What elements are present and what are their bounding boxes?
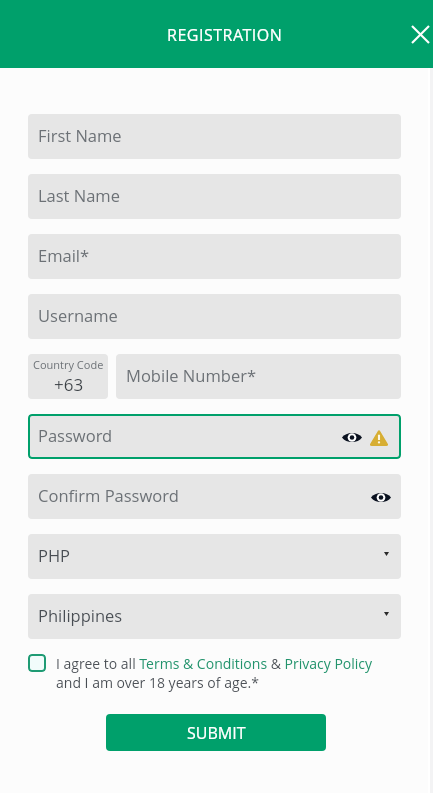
button[interactable]: PHP — [28, 534, 401, 579]
button[interactable]: Philippines — [28, 594, 401, 639]
staticText: and I am over 18 years of age.* — [56, 673, 259, 692]
staticText: Username — [38, 304, 118, 326]
staticText: Mobile Number* — [126, 364, 256, 386]
button[interactable]: Last Name — [28, 174, 401, 219]
button[interactable]: First Name — [28, 114, 401, 159]
staticText: Confirm Password — [38, 484, 179, 506]
button[interactable]: SUBMIT — [106, 714, 326, 751]
staticText: SUBMIT — [187, 722, 246, 744]
staticText: REGISTRATION — [167, 24, 283, 46]
button[interactable]: Show confirm password — [369, 485, 393, 509]
button[interactable]: Mobile Number* — [116, 354, 401, 399]
button[interactable]: Username — [28, 294, 401, 339]
button[interactable]: Confirm Password — [28, 474, 401, 519]
staticText: Email* — [38, 244, 90, 266]
staticText: Password — [38, 424, 113, 446]
staticText: +63 — [54, 373, 84, 396]
staticText: I agree to all Terms & Conditions & Priv… — [56, 654, 373, 673]
staticText: Country Code — [33, 357, 104, 372]
button[interactable]: Show password — [340, 425, 364, 449]
staticText: PHP — [38, 544, 71, 566]
staticText: Philippines — [38, 604, 123, 626]
button[interactable]: Country Code — [28, 354, 108, 399]
staticText: First Name — [38, 124, 122, 146]
button[interactable]: I agree to terms — [28, 654, 46, 672]
button[interactable]: Email* — [28, 234, 401, 279]
button[interactable]: Password — [28, 414, 401, 459]
button[interactable]: Close — [404, 18, 433, 51]
staticText: Last Name — [38, 184, 120, 206]
